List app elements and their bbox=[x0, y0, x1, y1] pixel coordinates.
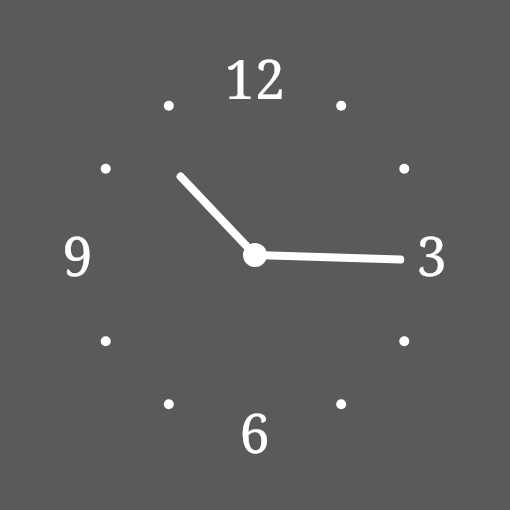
button[interactable]: Analog watch face showing ten past ten bbox=[0, 0, 510, 510]
